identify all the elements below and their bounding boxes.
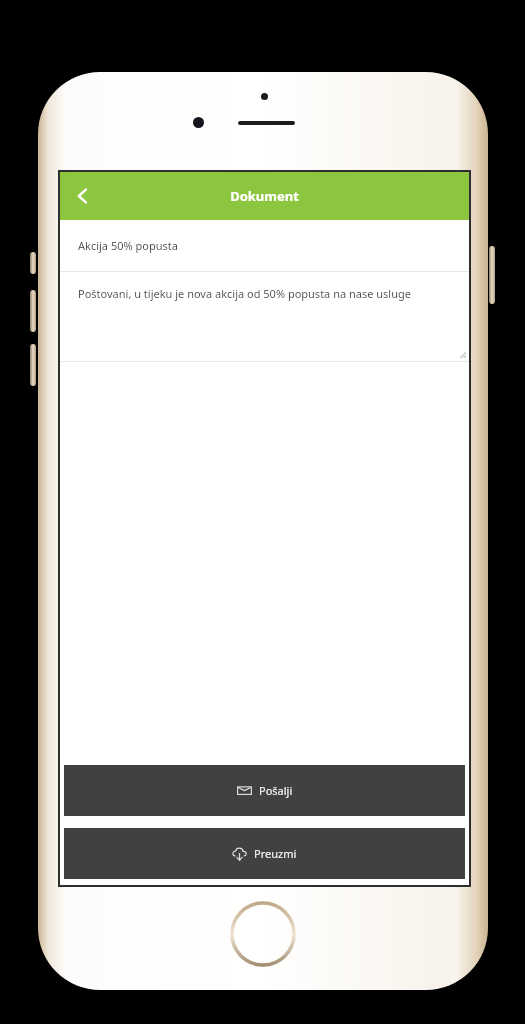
button[interactable]: Download: [64, 828, 465, 879]
other: Send: [237, 783, 252, 798]
button[interactable]: Poštovani, u tijeku je nova akcija od 50…: [60, 272, 469, 361]
button[interactable]: Back: [60, 174, 104, 218]
staticText: Pošalji: [259, 783, 293, 798]
staticText: Akcija 50% popusta: [78, 238, 178, 253]
other: Download: [232, 846, 247, 861]
staticText: Preuzmi: [254, 846, 297, 861]
button[interactable]: Akcija 50% popusta: [60, 220, 469, 271]
staticText: Poštovani, u tijeku je nova akcija od 50…: [78, 286, 411, 301]
button[interactable]: Send: [64, 765, 465, 816]
staticText: Dokument: [230, 187, 299, 205]
